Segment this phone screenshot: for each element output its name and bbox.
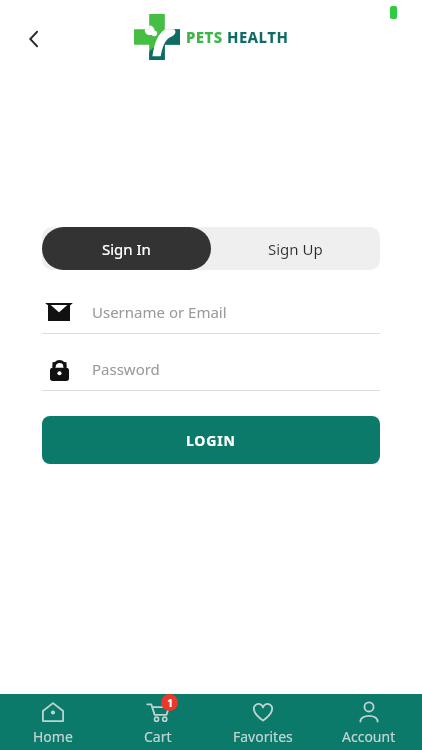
staticText: Sign Up — [268, 239, 323, 259]
staticText: Password — [92, 359, 160, 379]
staticText: Sign In — [102, 239, 151, 259]
staticText: PETS — [186, 27, 223, 47]
button[interactable]: Sign Up — [211, 227, 380, 270]
button[interactable]: Password — [42, 348, 380, 390]
button[interactable]: Username or Email — [42, 291, 380, 333]
staticText: 1 — [167, 696, 173, 710]
button[interactable]: 1 — [105, 694, 210, 750]
button[interactable]: LOGIN — [42, 416, 380, 464]
staticText: LOGIN — [186, 431, 236, 450]
button[interactable]: Sign In — [42, 227, 211, 270]
staticText: Cart — [144, 727, 172, 746]
staticText: Account — [342, 727, 396, 746]
button[interactable]: Account — [316, 694, 422, 750]
button[interactable]: Favorites — [210, 694, 316, 750]
button[interactable]: Back — [12, 17, 56, 61]
staticText: Home — [33, 727, 73, 746]
staticText: HEALTH — [227, 27, 289, 47]
staticText: Favorites — [233, 727, 293, 746]
staticText: Username or Email — [92, 302, 227, 322]
button[interactable]: Home — [0, 694, 105, 750]
